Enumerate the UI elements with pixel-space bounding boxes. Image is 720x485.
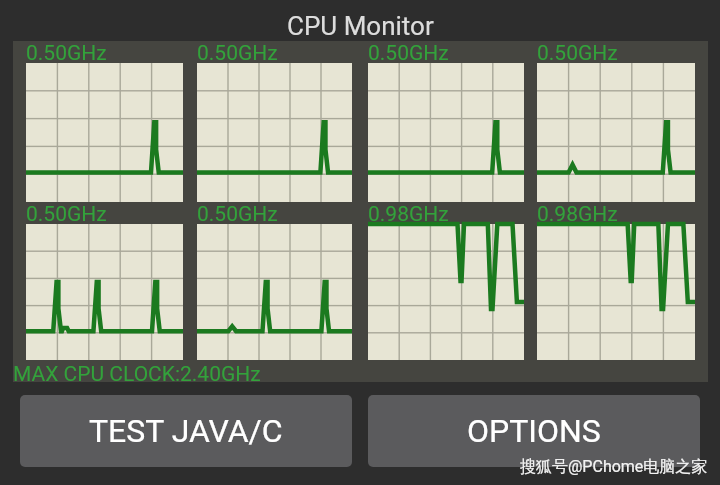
button[interactable]: OPTIONS [368, 395, 700, 467]
staticText: CPU Monitor [287, 11, 434, 41]
button[interactable]: TEST JAVA/C [20, 395, 352, 467]
staticText: 搜狐号@PChome电脑之家 [520, 457, 708, 477]
staticText: MAX CPU CLOCK:2.40GHz [13, 362, 261, 387]
staticText: 0.98GHz [537, 202, 618, 227]
staticText: 0.50GHz [368, 41, 449, 66]
staticText: TEST JAVA/C [89, 412, 283, 450]
staticText: 0.98GHz [368, 202, 449, 227]
staticText: OPTIONS [467, 412, 601, 450]
staticText: 0.50GHz [26, 202, 107, 227]
staticText: 0.50GHz [197, 41, 278, 66]
staticText: 0.50GHz [26, 41, 107, 66]
staticText: 0.50GHz [537, 41, 618, 66]
staticText: 0.50GHz [197, 202, 278, 227]
